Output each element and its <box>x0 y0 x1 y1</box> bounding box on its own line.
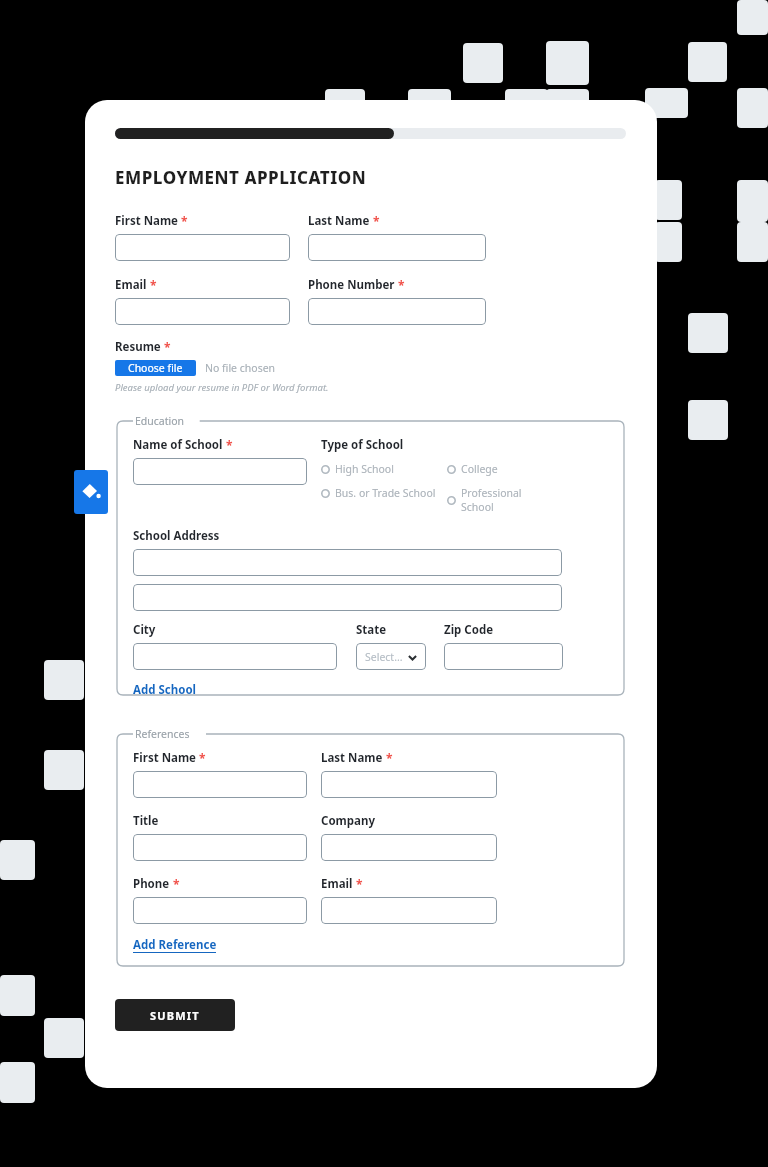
staticText: References <box>135 727 190 741</box>
button[interactable]: Select... <box>356 643 426 670</box>
staticText: SUBMIT <box>150 1008 200 1023</box>
staticText: Add School <box>133 682 197 697</box>
button[interactable]: Professional School <box>447 486 557 514</box>
staticText: Zip Code <box>444 622 494 638</box>
staticText: College <box>461 462 498 476</box>
staticText: Last Name <box>308 213 370 229</box>
staticText: Resume <box>115 339 161 355</box>
button[interactable] <box>133 834 307 861</box>
staticText: Email <box>115 277 147 293</box>
button[interactable]: Theme color <box>74 470 108 514</box>
staticText: * <box>370 213 380 229</box>
staticText: Phone Number <box>308 277 395 293</box>
staticText: State <box>356 622 387 638</box>
button[interactable] <box>308 298 486 325</box>
staticText: Title <box>133 813 159 829</box>
staticText: * <box>147 277 157 293</box>
staticText: First Name <box>115 213 178 229</box>
staticText: * <box>196 750 206 766</box>
button[interactable]: Add School <box>133 682 197 697</box>
button[interactable] <box>133 549 562 576</box>
button[interactable]: Bus. or Trade School <box>321 486 447 500</box>
staticText: * <box>223 437 233 453</box>
staticText: Last Name <box>321 750 383 766</box>
button[interactable] <box>115 298 290 325</box>
button[interactable] <box>321 771 497 798</box>
button[interactable] <box>321 897 497 924</box>
button[interactable]: Choose file <box>115 360 196 376</box>
button[interactable] <box>133 458 307 485</box>
staticText: EMPLOYMENT APPLICATION <box>115 166 367 189</box>
staticText: Education <box>135 414 185 428</box>
staticText: No file chosen <box>205 361 276 375</box>
staticText: Phone <box>133 876 170 892</box>
staticText: * <box>353 876 363 892</box>
staticText: Choose file <box>128 361 183 375</box>
staticText: * <box>383 750 393 766</box>
staticText: Please upload your resume in PDF or Word… <box>115 381 329 394</box>
button[interactable] <box>115 234 290 261</box>
staticText: Name of School <box>133 437 223 453</box>
button[interactable] <box>308 234 486 261</box>
staticText: High School <box>335 462 394 476</box>
staticText: Type of School <box>321 437 404 453</box>
button[interactable]: SUBMIT <box>115 999 235 1031</box>
button[interactable]: Add Reference <box>133 937 217 954</box>
staticText: Professional School <box>461 486 557 514</box>
button[interactable] <box>444 643 563 670</box>
button[interactable] <box>133 897 307 924</box>
button[interactable] <box>321 834 497 861</box>
staticText: Bus. or Trade School <box>335 486 436 500</box>
staticText: * <box>170 876 180 892</box>
button[interactable]: College <box>447 462 557 476</box>
staticText: * <box>178 213 188 229</box>
staticText: Company <box>321 813 375 829</box>
staticText: School Address <box>133 528 220 544</box>
staticText: Add Reference <box>133 937 217 953</box>
button[interactable] <box>133 771 307 798</box>
staticText: First Name <box>133 750 196 766</box>
staticText: Select... <box>365 650 403 664</box>
button[interactable] <box>133 584 562 611</box>
staticText: * <box>395 277 405 293</box>
button[interactable] <box>133 643 337 670</box>
staticText: Email <box>321 876 353 892</box>
staticText: City <box>133 622 156 638</box>
staticText: * <box>161 339 171 355</box>
button[interactable]: High School <box>321 462 447 476</box>
